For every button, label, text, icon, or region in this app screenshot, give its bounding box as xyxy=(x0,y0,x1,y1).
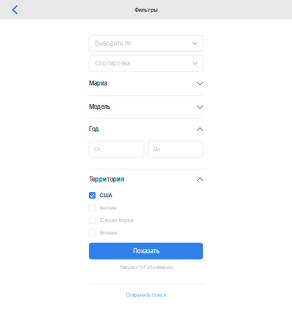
button[interactable]: Сохранить поиск xyxy=(126,292,166,298)
staticText: Найдено 54 объявления xyxy=(120,265,172,270)
staticText: Фильтры xyxy=(134,7,157,13)
staticText: От xyxy=(94,146,100,152)
staticText: Год xyxy=(89,126,99,133)
staticText: До xyxy=(153,146,160,152)
button[interactable]: Год xyxy=(89,119,203,140)
staticText: Выводить по xyxy=(95,40,132,47)
staticText: Территория xyxy=(89,176,124,183)
staticText: Южная Корея xyxy=(100,217,134,223)
button[interactable]: Территория xyxy=(89,170,203,189)
button[interactable]: Back xyxy=(0,0,30,19)
button[interactable]: Южная Корея xyxy=(89,214,203,227)
button[interactable]: США xyxy=(89,189,203,202)
staticText: Япония xyxy=(100,230,118,236)
staticText: Сохранить поиск xyxy=(126,292,166,298)
button[interactable]: Англия xyxy=(89,202,203,214)
staticText: США xyxy=(100,192,113,198)
staticText: Англия xyxy=(100,205,117,211)
staticText: Марка xyxy=(89,80,107,87)
button[interactable]: Показать xyxy=(89,243,203,259)
staticText: Показать xyxy=(133,247,159,255)
button[interactable]: Модель xyxy=(89,96,203,118)
staticText: Сортировка xyxy=(95,60,130,67)
button[interactable]: От xyxy=(89,141,144,157)
button[interactable]: До xyxy=(148,141,203,157)
button[interactable]: Сортировка xyxy=(89,55,203,71)
staticText: Модель xyxy=(89,103,110,110)
button[interactable]: Выводить по xyxy=(89,35,203,51)
button[interactable]: Марка xyxy=(89,71,203,95)
button[interactable]: Япония xyxy=(89,227,203,239)
